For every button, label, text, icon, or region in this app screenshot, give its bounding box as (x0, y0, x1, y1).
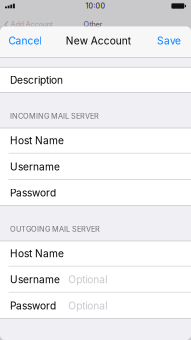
button[interactable]: Username (0, 154, 191, 180)
staticText: Optional (68, 273, 107, 286)
button[interactable]: Username (0, 267, 191, 293)
staticText: Save (157, 35, 181, 47)
staticText: Username (10, 161, 60, 173)
staticText: New Account (66, 35, 131, 47)
staticText: Optional (68, 300, 107, 312)
staticText: Password (10, 187, 56, 199)
button[interactable]: Cancel (0, 26, 47, 55)
staticText: Password (10, 300, 56, 312)
staticText: OUTGOING MAIL SERVER (10, 225, 100, 233)
staticText: Username (10, 273, 60, 286)
staticText: INCOMING MAIL SERVER (10, 112, 99, 121)
staticText: Description (10, 74, 63, 86)
staticText: Add Account (11, 20, 53, 29)
staticText: 10:00 (85, 2, 105, 10)
staticText: Host Name (10, 134, 64, 147)
button[interactable]: Description (0, 67, 191, 93)
button[interactable]: Host Name (0, 128, 191, 154)
button[interactable]: Password (0, 180, 191, 206)
staticText: Other (83, 20, 102, 29)
staticText: Cancel (8, 35, 41, 47)
staticText: Host Name (10, 247, 64, 260)
button[interactable]: Save (151, 26, 191, 55)
button[interactable]: Host Name (0, 240, 191, 267)
button[interactable]: Password (0, 293, 191, 319)
